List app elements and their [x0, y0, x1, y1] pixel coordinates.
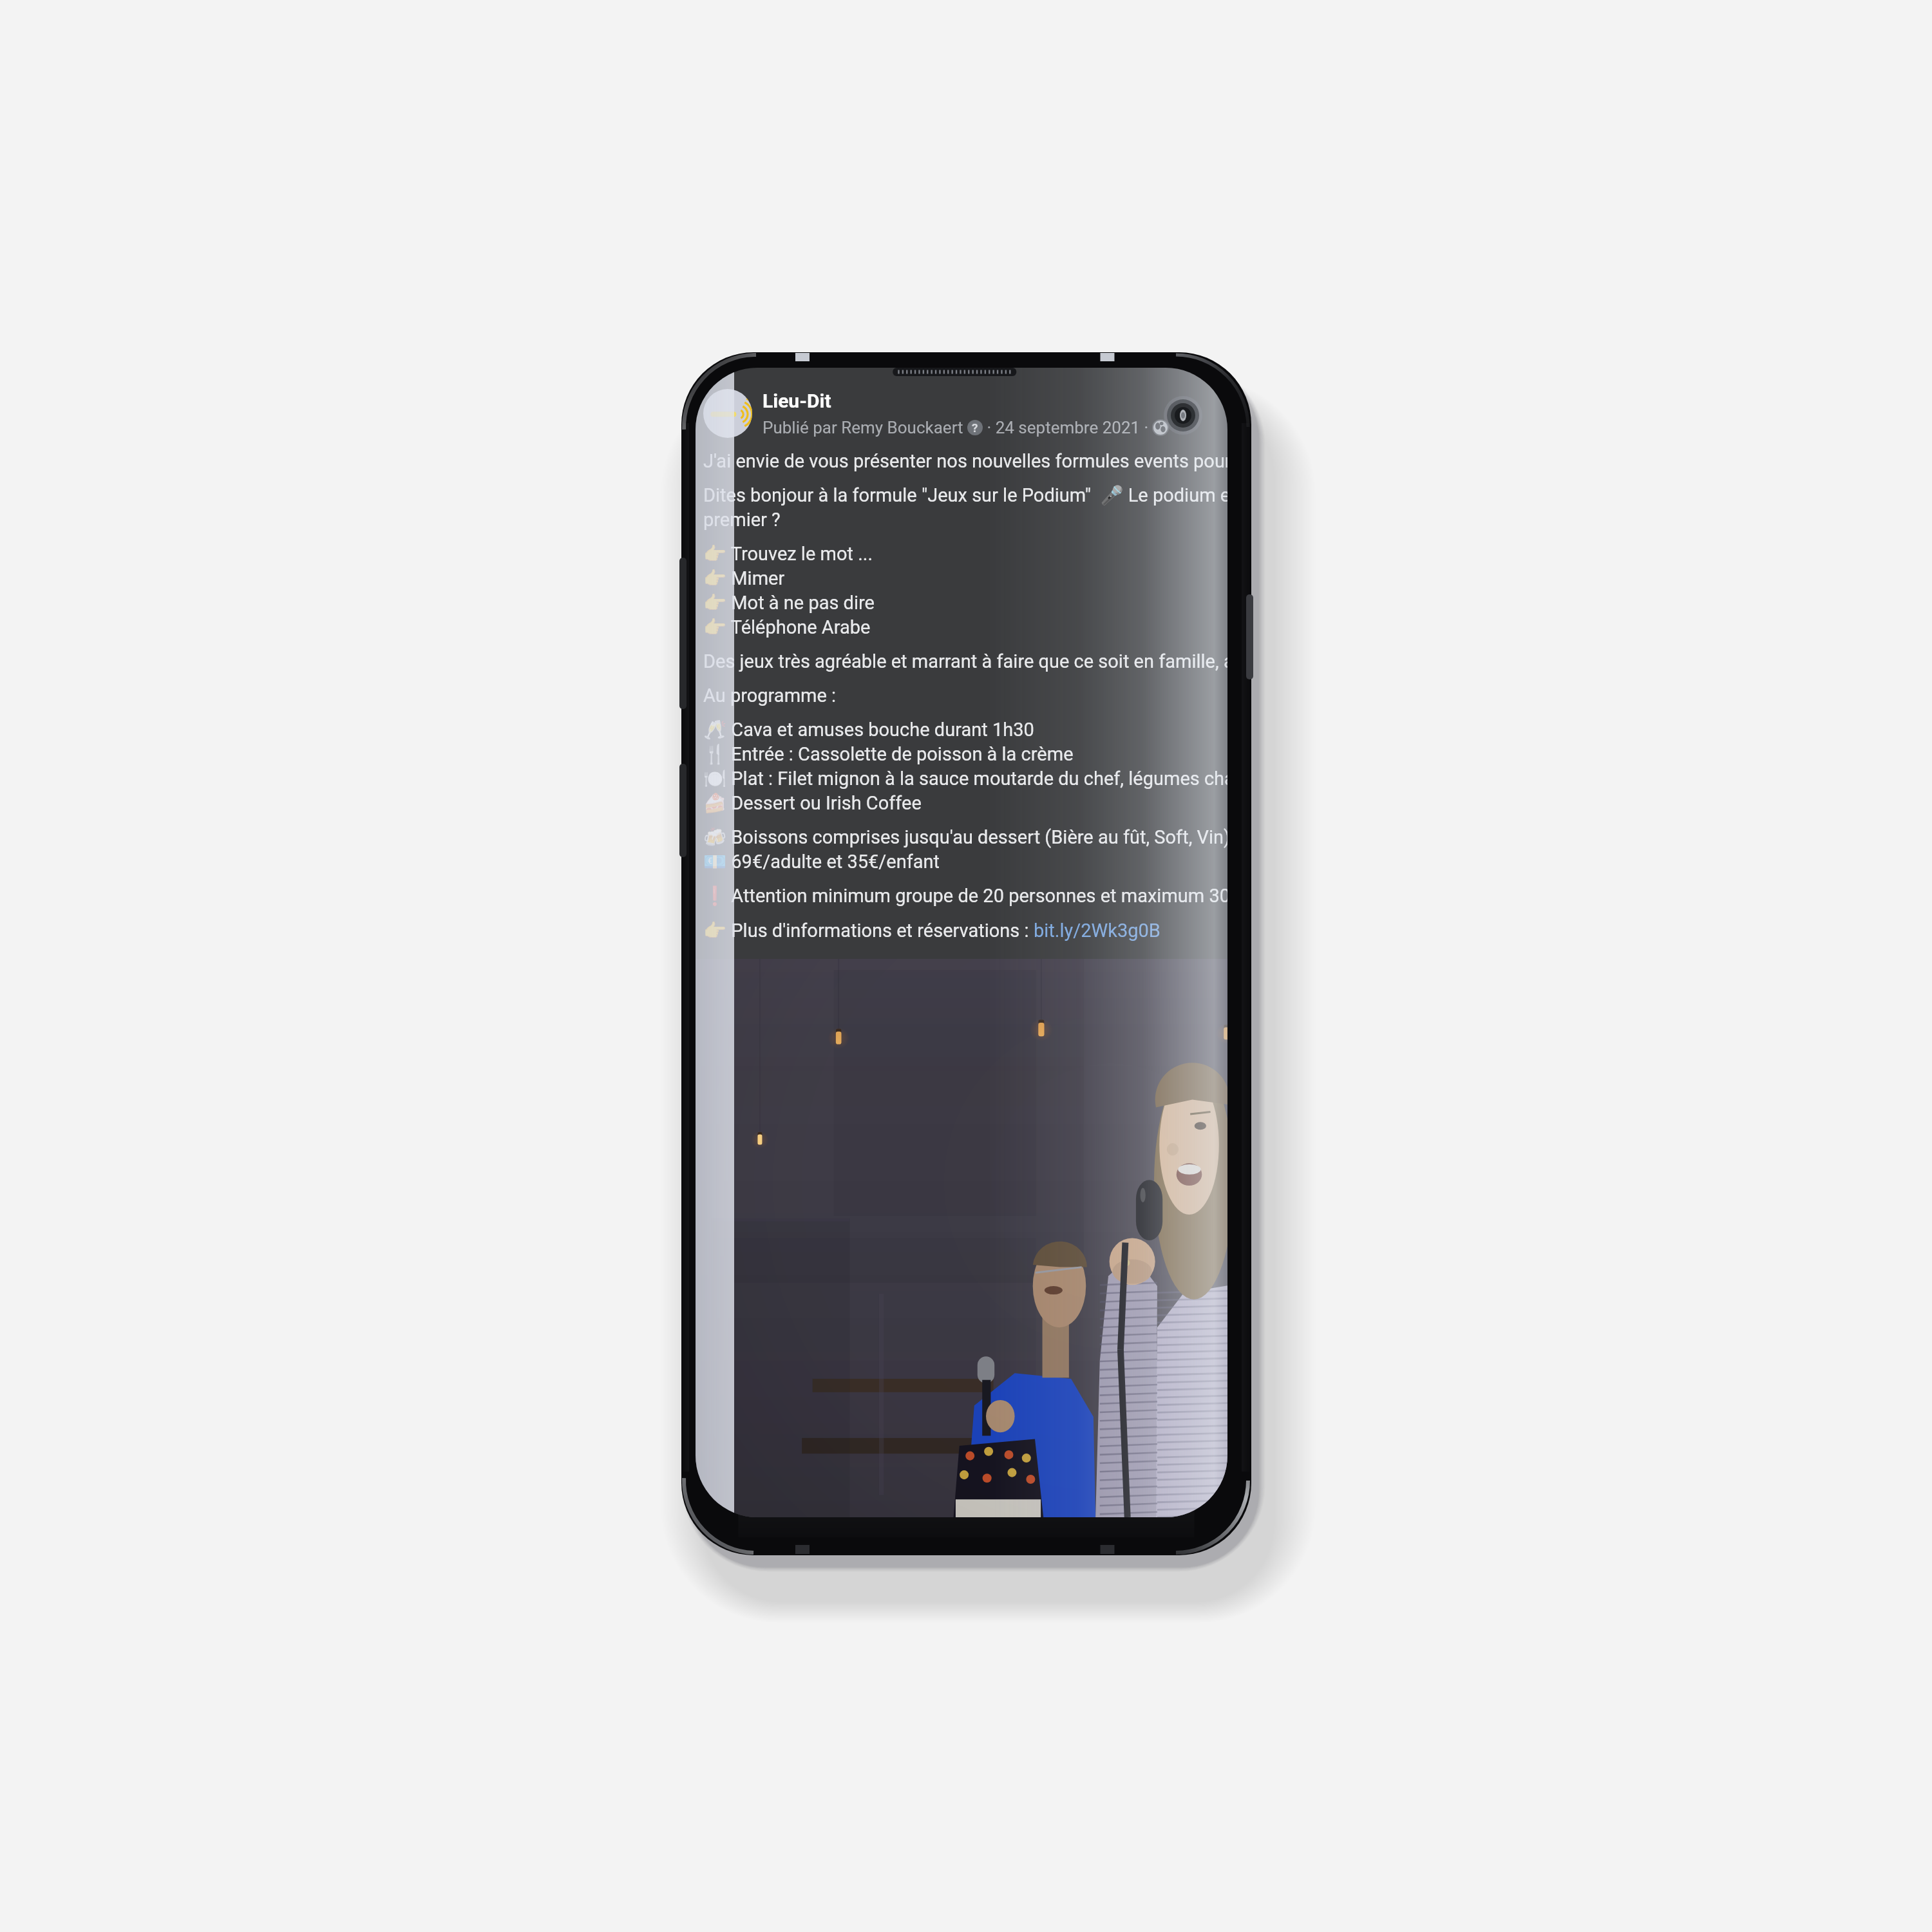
button[interactable]: Lieu-Dit page photo: [703, 389, 752, 438]
staticText: 👉 Trouvez le mot ...: [703, 543, 873, 565]
staticText: 👉 Mot à ne pas dire: [703, 592, 875, 614]
staticText: 🍽 Plat : Filet mignon à la sauce moutard…: [703, 768, 1227, 790]
staticText: 👉 Mimer: [703, 567, 785, 589]
button[interactable]: 👉 Plus d'informations et réservations :: [703, 920, 1160, 942]
staticText: bit.ly/2Wk3g0B: [1034, 920, 1160, 942]
staticText: 👉 Plus d'informations et réservations :: [703, 920, 1034, 942]
staticText: premier ?: [703, 509, 781, 531]
staticText: Publié par Remy Bouckaert: [762, 418, 963, 437]
staticText: · 24 septembre 2021 ·: [983, 418, 1153, 437]
staticText: 🍰 Dessert ou Irish Coffee: [703, 792, 922, 814]
button[interactable]: Lieu-Dit page photo: [703, 389, 1218, 438]
button[interactable]: Post photo: [696, 959, 1227, 1517]
staticText: ?: [972, 421, 978, 435]
staticText: 🥂 Cava et amuses bouche durant 1h30: [703, 719, 1034, 741]
staticText: Lieu-Dit: [762, 390, 831, 412]
staticText: Dites bonjour à la formule "Jeux sur le …: [703, 484, 1227, 506]
staticText: Au programme :: [703, 685, 837, 706]
staticText: 🍻 Boissons comprises jusqu'au dessert (B…: [703, 826, 1227, 848]
staticText: J'ai envie de vous présenter nos nouvell…: [703, 450, 1227, 472]
staticText: 👉 Téléphone Arabe: [703, 616, 871, 638]
staticText: 💶 69€/adulte et 35€/enfant: [703, 851, 940, 873]
staticText: Des jeux très agréable et marrant à fair…: [703, 650, 1227, 672]
button[interactable]: About this post: [967, 420, 983, 435]
staticText: 🍴 Entrée : Cassolette de poisson à la cr…: [703, 743, 1074, 765]
button[interactable]: Public audience: [1153, 420, 1168, 435]
staticText: ❗ Attention minimum groupe de 20 personn…: [703, 885, 1227, 907]
